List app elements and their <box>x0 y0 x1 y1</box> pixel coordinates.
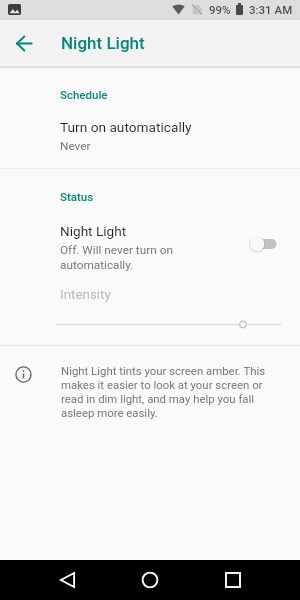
staticText: Status <box>60 190 94 203</box>
staticText: Intensity <box>60 287 111 303</box>
button[interactable]: Home <box>130 560 170 600</box>
button[interactable]: Night Light on/off <box>248 236 277 252</box>
staticText: Turn on automatically <box>60 119 192 135</box>
button[interactable]: Recent apps <box>213 560 253 600</box>
staticText: Schedule <box>60 88 108 101</box>
staticText: Night Light <box>61 33 145 53</box>
button[interactable]: Navigate up <box>10 29 38 57</box>
button[interactable]: Back <box>47 560 87 600</box>
staticText: Night Light <box>60 223 127 239</box>
staticText: 99% <box>209 3 231 16</box>
staticText: Never <box>60 139 91 153</box>
button[interactable]: Intensity <box>0 315 300 335</box>
button[interactable]: Night Light <box>0 216 300 276</box>
button[interactable]: Turn on automatically <box>0 112 300 160</box>
staticText: Night Light tints your screen amber. Thi… <box>61 364 279 420</box>
staticText: 3:31 AM <box>249 3 293 16</box>
staticText: Off. Will never turn on automatically. <box>60 243 173 272</box>
